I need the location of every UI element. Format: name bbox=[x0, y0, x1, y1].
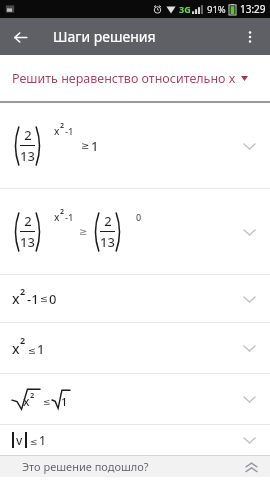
staticText: x bbox=[54, 210, 60, 224]
button[interactable]: x bbox=[0, 323, 270, 373]
staticText: -1 bbox=[65, 211, 74, 224]
staticText: 2 bbox=[60, 207, 65, 217]
staticText: ≤ bbox=[40, 293, 48, 304]
button[interactable]: 2 bbox=[0, 189, 270, 274]
staticText: x bbox=[12, 289, 20, 308]
staticText: 2 bbox=[104, 212, 112, 230]
staticText: 1 bbox=[91, 137, 99, 155]
other: Expand step bbox=[238, 429, 260, 451]
other: Expand step bbox=[238, 221, 260, 243]
staticText: 13 bbox=[20, 147, 35, 165]
staticText: Шаги решения bbox=[53, 27, 156, 46]
staticText: 13 bbox=[20, 233, 35, 251]
other: Expand step bbox=[238, 288, 260, 310]
button[interactable]: Back bbox=[6, 23, 34, 51]
staticText: Решить неравенство относительно x bbox=[12, 70, 236, 87]
staticText: x bbox=[23, 393, 30, 409]
staticText: -1 bbox=[65, 125, 74, 138]
staticText: v bbox=[16, 432, 23, 448]
staticText: ≥ bbox=[79, 226, 88, 238]
other: Expand step bbox=[238, 388, 260, 410]
staticText: x bbox=[12, 339, 20, 358]
staticText: 2 bbox=[24, 126, 32, 144]
button[interactable]: x bbox=[0, 275, 270, 322]
staticText: 1 bbox=[39, 432, 46, 448]
staticText: 2 bbox=[24, 212, 32, 230]
staticText: ≤ bbox=[43, 397, 51, 407]
button[interactable]: x bbox=[0, 374, 270, 424]
button[interactable]: Это решение подошло? bbox=[0, 456, 270, 477]
staticText: -1 bbox=[27, 290, 39, 308]
staticText: Это решение подошло? bbox=[22, 459, 149, 474]
button[interactable]: v bbox=[0, 425, 270, 455]
button[interactable]: More options bbox=[236, 23, 264, 51]
staticText: 3G bbox=[179, 3, 191, 15]
staticText: ≥ bbox=[81, 140, 90, 152]
staticText: 2 bbox=[60, 121, 65, 131]
staticText: 13 bbox=[100, 233, 115, 251]
other: Expand feedback bbox=[242, 458, 260, 476]
staticText: 91% bbox=[207, 3, 226, 16]
staticText: 2 bbox=[30, 390, 35, 400]
staticText: 1 bbox=[61, 394, 68, 409]
staticText: 0 bbox=[49, 290, 57, 308]
staticText: 1 bbox=[37, 340, 45, 358]
other: Expand step bbox=[238, 337, 260, 359]
staticText: ≤ bbox=[28, 345, 36, 356]
staticText: 0 bbox=[136, 211, 142, 223]
staticText: 2 bbox=[20, 285, 26, 297]
button[interactable]: 2 bbox=[0, 103, 270, 188]
staticText: x bbox=[54, 124, 60, 138]
staticText: 13:29 bbox=[240, 2, 266, 16]
staticText: ≤ bbox=[30, 437, 38, 447]
staticText: 2 bbox=[20, 334, 26, 346]
button[interactable]: Решить неравенство относительно x bbox=[0, 55, 270, 101]
other: Expand step bbox=[238, 135, 260, 157]
